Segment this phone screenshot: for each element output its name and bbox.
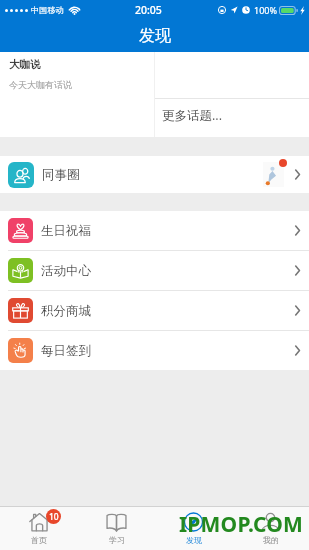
staticText: 20:05 <box>135 3 162 17</box>
button[interactable]: 积分商城 <box>0 291 309 330</box>
staticText: 同事圈 <box>42 167 80 183</box>
button[interactable]: 生日祝福 <box>0 211 309 250</box>
button[interactable]: 每日签到 <box>0 331 309 370</box>
staticText: 10 <box>49 511 59 523</box>
button[interactable]: 发现 <box>155 507 232 550</box>
staticText: 每日签到 <box>41 343 91 359</box>
staticText: 发现 <box>186 535 202 545</box>
staticText: 积分商城 <box>41 303 91 319</box>
button[interactable]: 同事圈 <box>0 156 309 193</box>
staticText: 生日祝福 <box>41 223 91 239</box>
staticText: 更多话题... <box>162 107 223 124</box>
button[interactable]: 大咖说 <box>0 52 154 137</box>
staticText: 中国移动 <box>31 5 64 15</box>
staticText: 学习 <box>109 535 125 545</box>
staticText: 活动中心 <box>41 263 91 279</box>
button[interactable]: 学习 <box>78 507 155 550</box>
staticText: IPMOP.COM <box>179 510 304 539</box>
button[interactable]: 活动中心 <box>0 251 309 290</box>
staticText: 今天大咖有话说 <box>9 79 72 90</box>
staticText: 我的 <box>263 535 279 545</box>
staticText: 100% <box>254 4 277 16</box>
button[interactable]: 10 <box>0 507 78 550</box>
button[interactable]: 我的 <box>232 507 309 550</box>
staticText: 发现 <box>139 26 171 46</box>
button[interactable]: 更多话题... <box>155 99 309 137</box>
staticText: 大咖说 <box>9 58 41 71</box>
staticText: 首页 <box>31 535 47 545</box>
